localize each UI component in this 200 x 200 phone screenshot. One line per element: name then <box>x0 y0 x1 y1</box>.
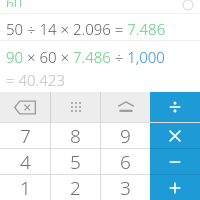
staticText: 6 <box>120 149 131 174</box>
button[interactable]: 5 <box>51 149 100 174</box>
staticText: 9 <box>120 123 131 148</box>
staticText: 3 <box>120 175 131 200</box>
button[interactable]: Keypad <box>51 92 100 122</box>
staticText: 60 <box>6 0 22 7</box>
button[interactable]: Multiply <box>150 123 200 148</box>
button[interactable]: Minus <box>150 149 200 174</box>
button[interactable]: Plus <box>150 175 200 200</box>
staticText: = 40.423 <box>6 70 65 90</box>
button[interactable]: 4 <box>0 149 50 174</box>
button[interactable]: 3 <box>101 175 150 200</box>
button[interactable]: Backspace <box>0 92 50 122</box>
staticText: 4 <box>20 149 31 174</box>
button[interactable]: 7 <box>0 123 50 148</box>
staticText: 90 × 60 × 7.486 ÷ 1,000 <box>6 47 165 67</box>
button[interactable]: Collapse <box>101 92 150 122</box>
button[interactable]: 1 <box>0 175 50 200</box>
staticText: 1 <box>20 175 31 200</box>
button[interactable]: History <box>176 0 200 13</box>
button[interactable]: 2 <box>51 175 100 200</box>
button[interactable]: Divide <box>150 92 200 122</box>
staticText: 2 <box>70 175 81 200</box>
staticText: 7 <box>20 123 31 148</box>
staticText: 5 <box>70 149 81 174</box>
button[interactable]: 8 <box>51 123 100 148</box>
button[interactable]: 6 <box>101 149 150 174</box>
button[interactable]: 9 <box>101 123 150 148</box>
staticText: 50 ÷ 14 × 2.096 = 7.486 <box>6 19 166 39</box>
staticText: 8 <box>70 123 81 148</box>
